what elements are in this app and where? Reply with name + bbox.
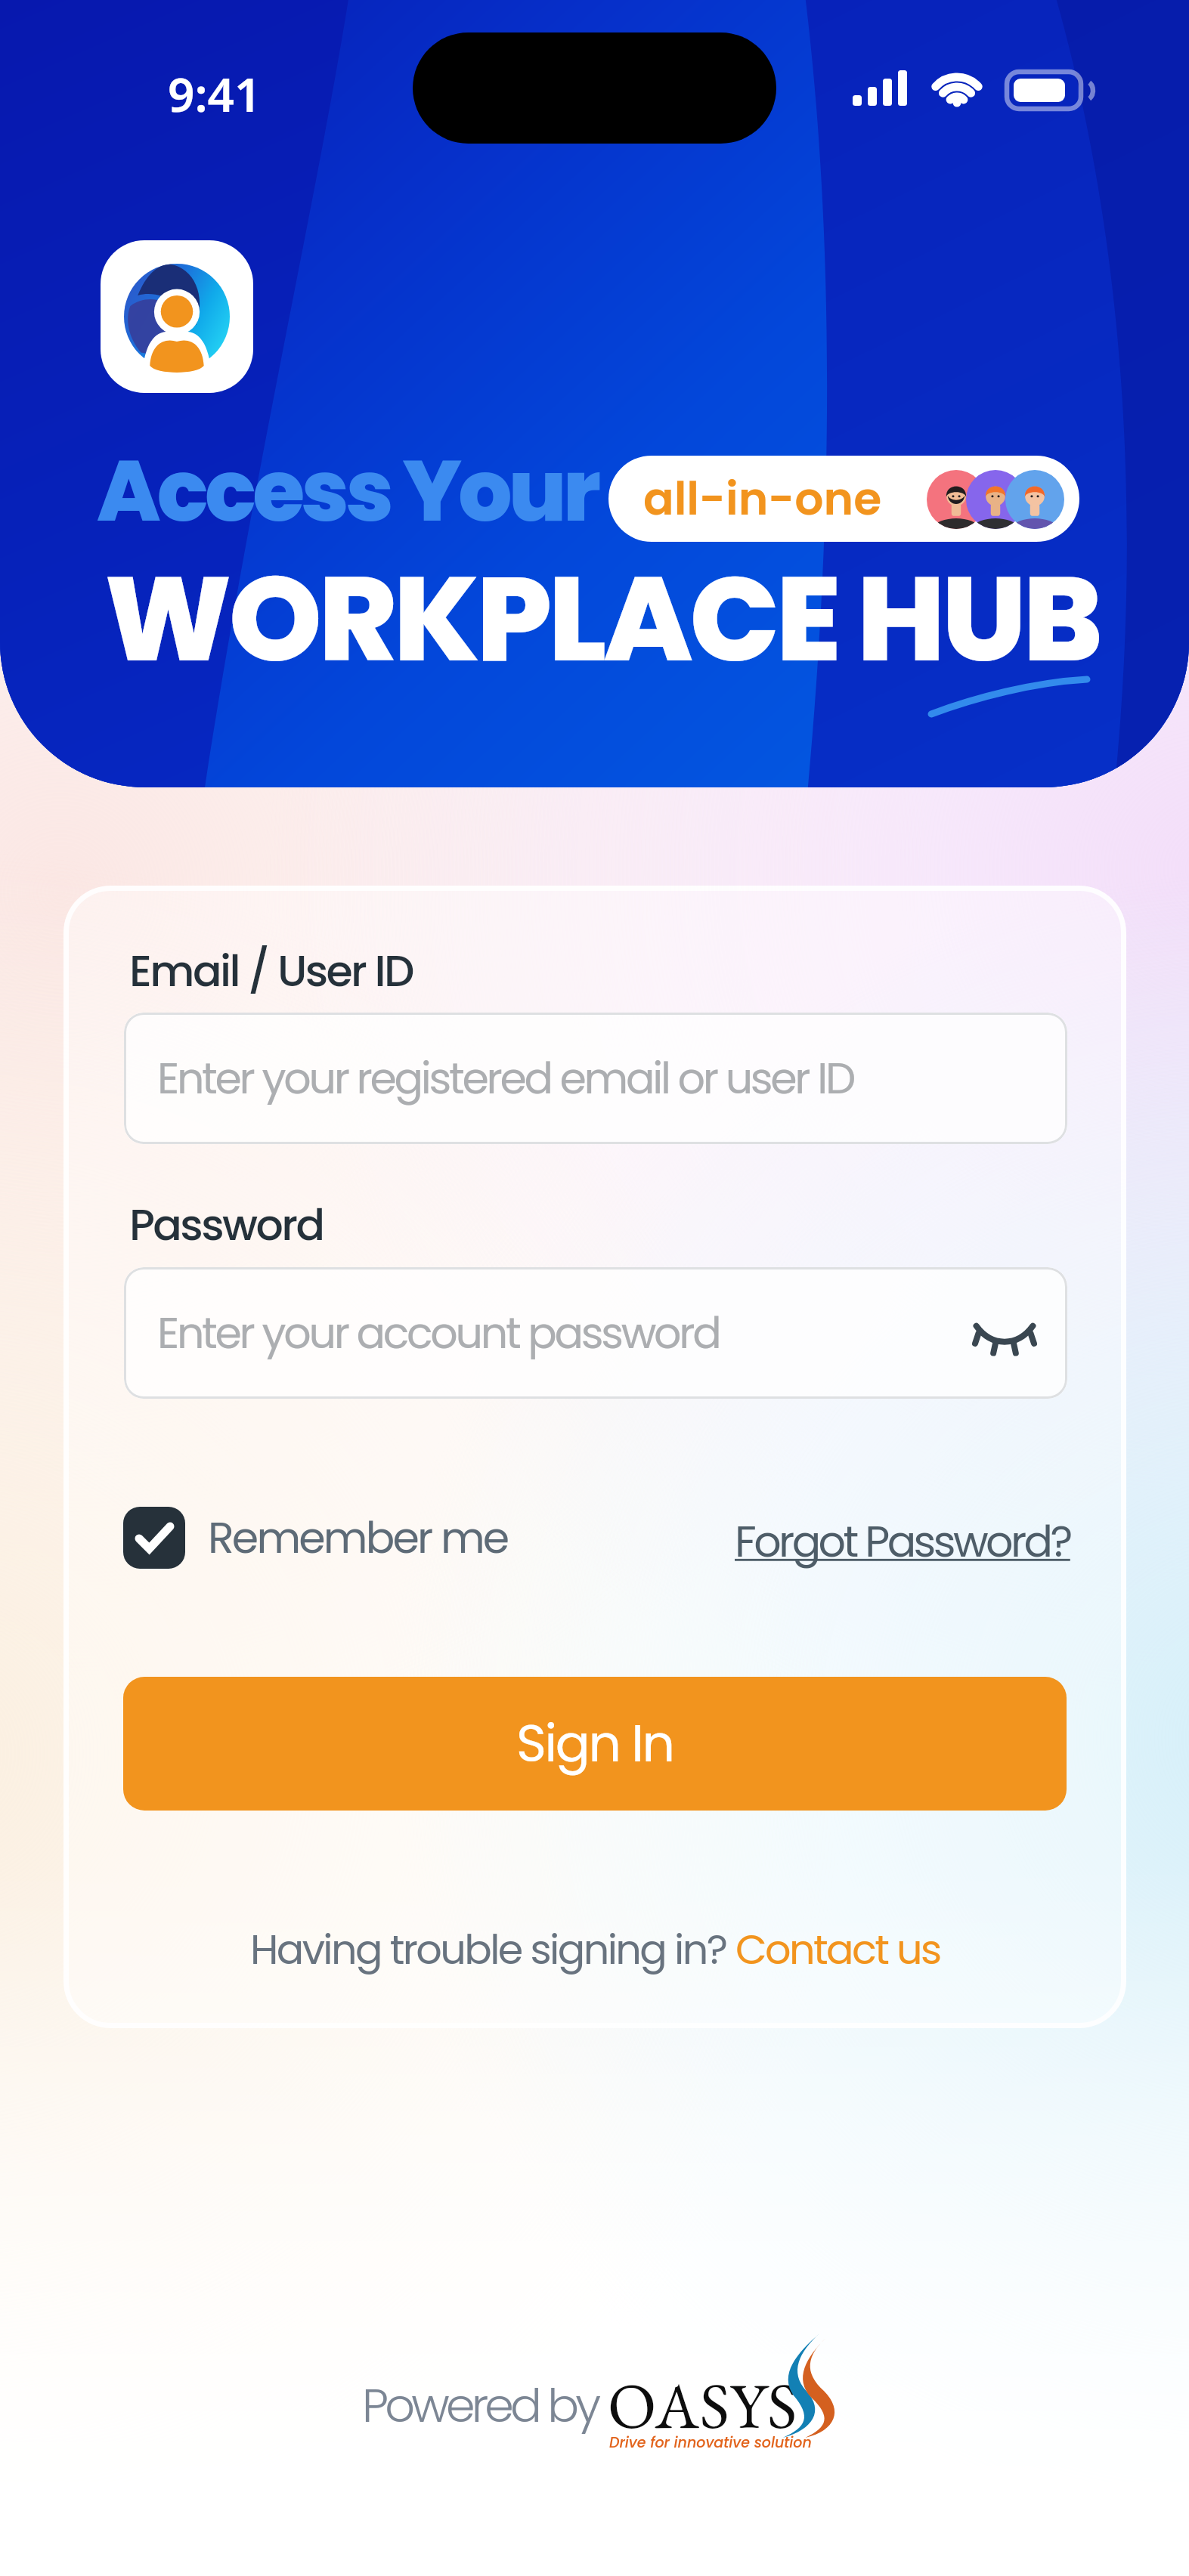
staticText: Drive for innovative solution [609, 2432, 812, 2453]
staticText: all-in-one [643, 467, 882, 530]
staticText: OASYS [608, 2364, 798, 2447]
button[interactable]: Show password [972, 1300, 1037, 1365]
staticText: Having trouble signing in? [250, 1921, 735, 1978]
button[interactable]: Enter your registered email or user ID [124, 1013, 1067, 1144]
staticText: Sign In [516, 1708, 673, 1780]
staticText: Access Your [97, 431, 597, 550]
button[interactable]: Forgot Password? [735, 1511, 1070, 1572]
staticText: WORKPLACE HUB [104, 536, 1100, 702]
staticText: Enter your registered email or user ID [157, 1048, 853, 1109]
staticText: Password [129, 1195, 324, 1255]
button[interactable]: Enter your account password [124, 1267, 1067, 1399]
staticText: Enter your account password [157, 1303, 720, 1363]
button[interactable]: Sign In [123, 1677, 1067, 1811]
staticText: Powered by [362, 2373, 598, 2438]
staticText: Email / User ID [129, 941, 413, 1001]
button[interactable]: Remember me [123, 1507, 508, 1569]
staticText: 9:41 [168, 62, 262, 125]
staticText: Remember me [208, 1508, 508, 1568]
button[interactable]: Contact us [735, 1921, 940, 1978]
